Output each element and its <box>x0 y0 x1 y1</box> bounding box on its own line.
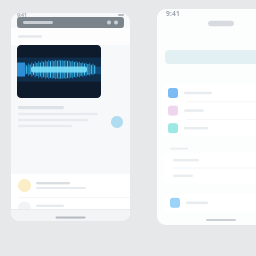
button[interactable]: Settings item <box>162 84 256 101</box>
staticText: 9:41 <box>166 9 180 18</box>
button[interactable]: List item <box>11 198 130 219</box>
button[interactable]: List item <box>11 174 130 197</box>
button[interactable]: Settings item <box>162 120 256 137</box>
button[interactable]: Row <box>164 153 256 168</box>
button[interactable]: Navigation bar <box>17 17 124 28</box>
button[interactable]: Settings item <box>162 102 256 119</box>
staticText: 9:41 <box>17 11 27 19</box>
button[interactable]: Settings item <box>164 194 256 211</box>
button[interactable]: Row <box>164 168 256 183</box>
